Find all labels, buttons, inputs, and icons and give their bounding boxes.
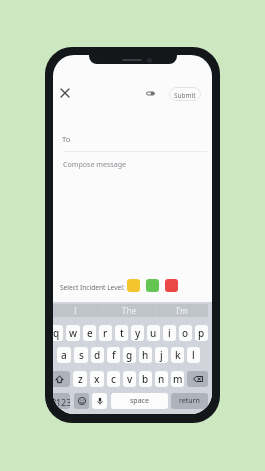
staticText: Compose message: [63, 159, 127, 169]
button[interactable]: r: [99, 325, 112, 341]
button[interactable]: c: [107, 371, 120, 387]
staticText: j: [160, 348, 163, 362]
staticText: b: [142, 372, 149, 386]
staticText: n: [158, 372, 165, 386]
button[interactable]: k: [171, 347, 184, 363]
button[interactable]: e: [83, 325, 96, 341]
button[interactable]: Submit: [169, 87, 201, 101]
button[interactable]: ?123: [53, 393, 70, 409]
button[interactable]: x: [90, 371, 104, 387]
button[interactable]: return: [171, 393, 208, 409]
staticText: x: [94, 372, 100, 386]
button[interactable]: m: [171, 371, 184, 387]
button[interactable]: i: [163, 325, 176, 341]
button[interactable]: o: [179, 325, 192, 341]
staticText: I: [74, 305, 77, 316]
staticText: e: [87, 326, 93, 340]
button[interactable]: Incident level red: [165, 279, 178, 292]
button[interactable]: n: [155, 371, 168, 387]
staticText: p: [198, 326, 205, 340]
button[interactable]: Incident level green: [146, 279, 159, 292]
staticText: v: [127, 372, 133, 386]
staticText: Submit: [174, 91, 196, 100]
staticText: The: [122, 305, 136, 316]
staticText: c: [111, 372, 116, 386]
staticText: q: [53, 326, 60, 340]
staticText: r: [103, 326, 108, 340]
staticText: w: [69, 326, 78, 340]
button[interactable]: I: [53, 304, 102, 317]
staticText: a: [61, 348, 67, 362]
staticText: y: [135, 326, 141, 340]
staticText: u: [150, 326, 157, 340]
button[interactable]: Dictate: [92, 393, 107, 409]
staticText: d: [94, 348, 101, 362]
button[interactable]: d: [91, 347, 104, 363]
staticText: z: [78, 372, 83, 386]
button[interactable]: g: [123, 347, 136, 363]
staticText: h: [142, 348, 149, 362]
staticText: f: [112, 348, 116, 362]
button[interactable]: a: [57, 347, 71, 363]
staticText: return: [179, 396, 200, 406]
button[interactable]: Backspace: [187, 371, 208, 387]
button[interactable]: z: [73, 371, 87, 387]
button[interactable]: b: [139, 371, 152, 387]
staticText: space: [130, 396, 149, 406]
button[interactable]: I'm: [156, 304, 208, 317]
button[interactable]: The: [103, 304, 155, 317]
staticText: o: [182, 326, 189, 340]
button[interactable]: u: [147, 325, 160, 341]
staticText: k: [175, 348, 181, 362]
staticText: s: [79, 348, 84, 362]
staticText: ?123: [53, 396, 70, 408]
button[interactable]: h: [139, 347, 152, 363]
button[interactable]: p: [195, 325, 208, 341]
staticText: t: [120, 326, 124, 340]
button[interactable]: t: [115, 325, 128, 341]
button[interactable]: y: [131, 325, 144, 341]
button[interactable]: space: [111, 393, 168, 409]
button[interactable]: Compose message: [53, 157, 212, 173]
staticText: l: [192, 348, 195, 362]
button[interactable]: l: [187, 347, 200, 363]
button[interactable]: Incident level yellow: [127, 279, 140, 292]
staticText: I'm: [176, 305, 188, 316]
button[interactable]: s: [74, 347, 88, 363]
button[interactable]: Shift: [53, 371, 70, 387]
button[interactable]: j: [155, 347, 168, 363]
button[interactable]: w: [66, 325, 80, 341]
staticText: Select Incident Level:: [60, 283, 125, 292]
button[interactable]: Emoji: [74, 393, 89, 409]
staticText: m: [173, 372, 183, 386]
button[interactable]: q: [53, 325, 63, 341]
button[interactable]: v: [123, 371, 136, 387]
button[interactable]: Attach file: [143, 86, 158, 100]
staticText: g: [126, 348, 133, 362]
button[interactable]: Close: [57, 86, 72, 100]
staticText: To: [62, 134, 71, 144]
button[interactable]: To: [53, 131, 212, 147]
button[interactable]: f: [107, 347, 120, 363]
staticText: i: [168, 326, 171, 340]
